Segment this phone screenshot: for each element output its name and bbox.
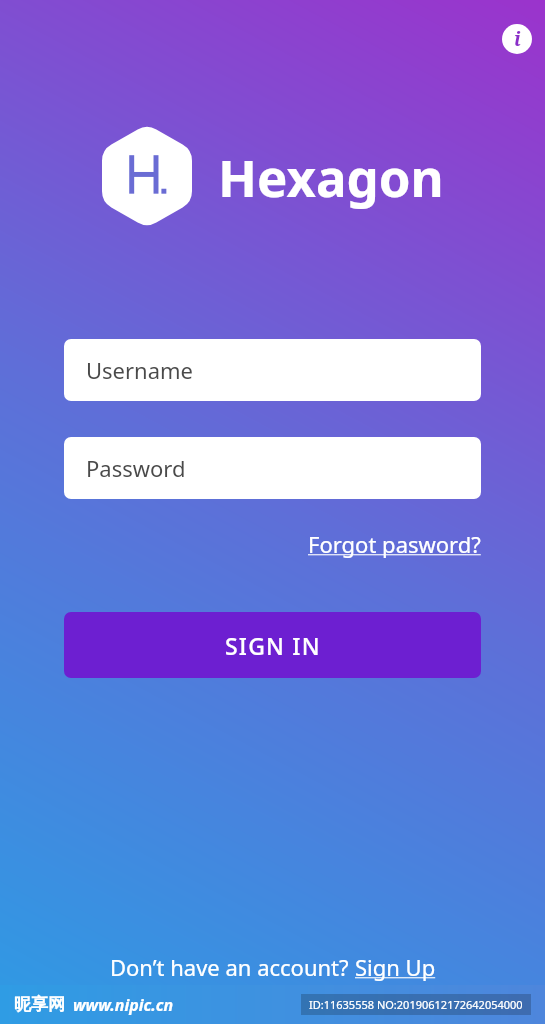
staticText: ID:11635558 NO:20190612172642054000 (309, 997, 523, 1012)
button[interactable]: Password (64, 437, 481, 499)
staticText: 昵享网 (14, 994, 65, 1015)
staticText: i (514, 26, 521, 52)
staticText: Password (86, 453, 186, 483)
staticText: Username (86, 355, 194, 385)
staticText: Hexagon (218, 142, 444, 211)
staticText: www.nipic.cn (73, 994, 174, 1016)
staticText: SIGN IN (225, 630, 321, 661)
staticText: Sign Up (355, 952, 436, 982)
button[interactable]: SIGN IN (64, 612, 481, 678)
staticText: Don’t have an account? (110, 952, 355, 982)
button[interactable]: Sign Up (355, 952, 436, 982)
button[interactable]: Information (502, 24, 532, 54)
button[interactable]: Forgot pasword? (308, 529, 481, 559)
button[interactable]: Username (64, 339, 481, 401)
staticText: Forgot pasword? (308, 529, 481, 559)
